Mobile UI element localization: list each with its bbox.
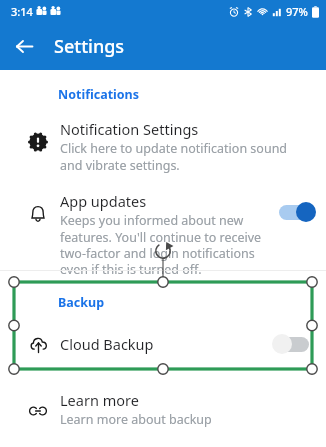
- staticText: App updates: [60, 191, 147, 211]
- button[interactable]: Back: [6, 28, 42, 64]
- staticText: 97%: [286, 4, 308, 19]
- button[interactable]: Cloud backup toggle: [272, 333, 312, 355]
- staticText: Keeps you informed about new features. Y…: [60, 212, 272, 277]
- button[interactable]: App updates: [0, 191, 326, 277]
- staticText: Learn more: [60, 390, 139, 410]
- button[interactable]: Learn more: [0, 390, 326, 432]
- staticText: Cloud Backup: [60, 334, 272, 354]
- button[interactable]: Notification Settings: [0, 119, 326, 173]
- staticText: Settings: [54, 34, 125, 59]
- staticText: Notification Settings: [60, 119, 199, 139]
- staticText: Backup: [58, 294, 105, 311]
- staticText: Learn more about backup: [60, 411, 212, 428]
- button[interactable]: Cloud Backup: [0, 333, 326, 355]
- button[interactable]: App updates toggle: [276, 201, 316, 223]
- staticText: Notifications: [58, 86, 140, 103]
- staticText: 3:14: [11, 4, 33, 19]
- staticText: Click here to update notification sound …: [60, 140, 312, 173]
